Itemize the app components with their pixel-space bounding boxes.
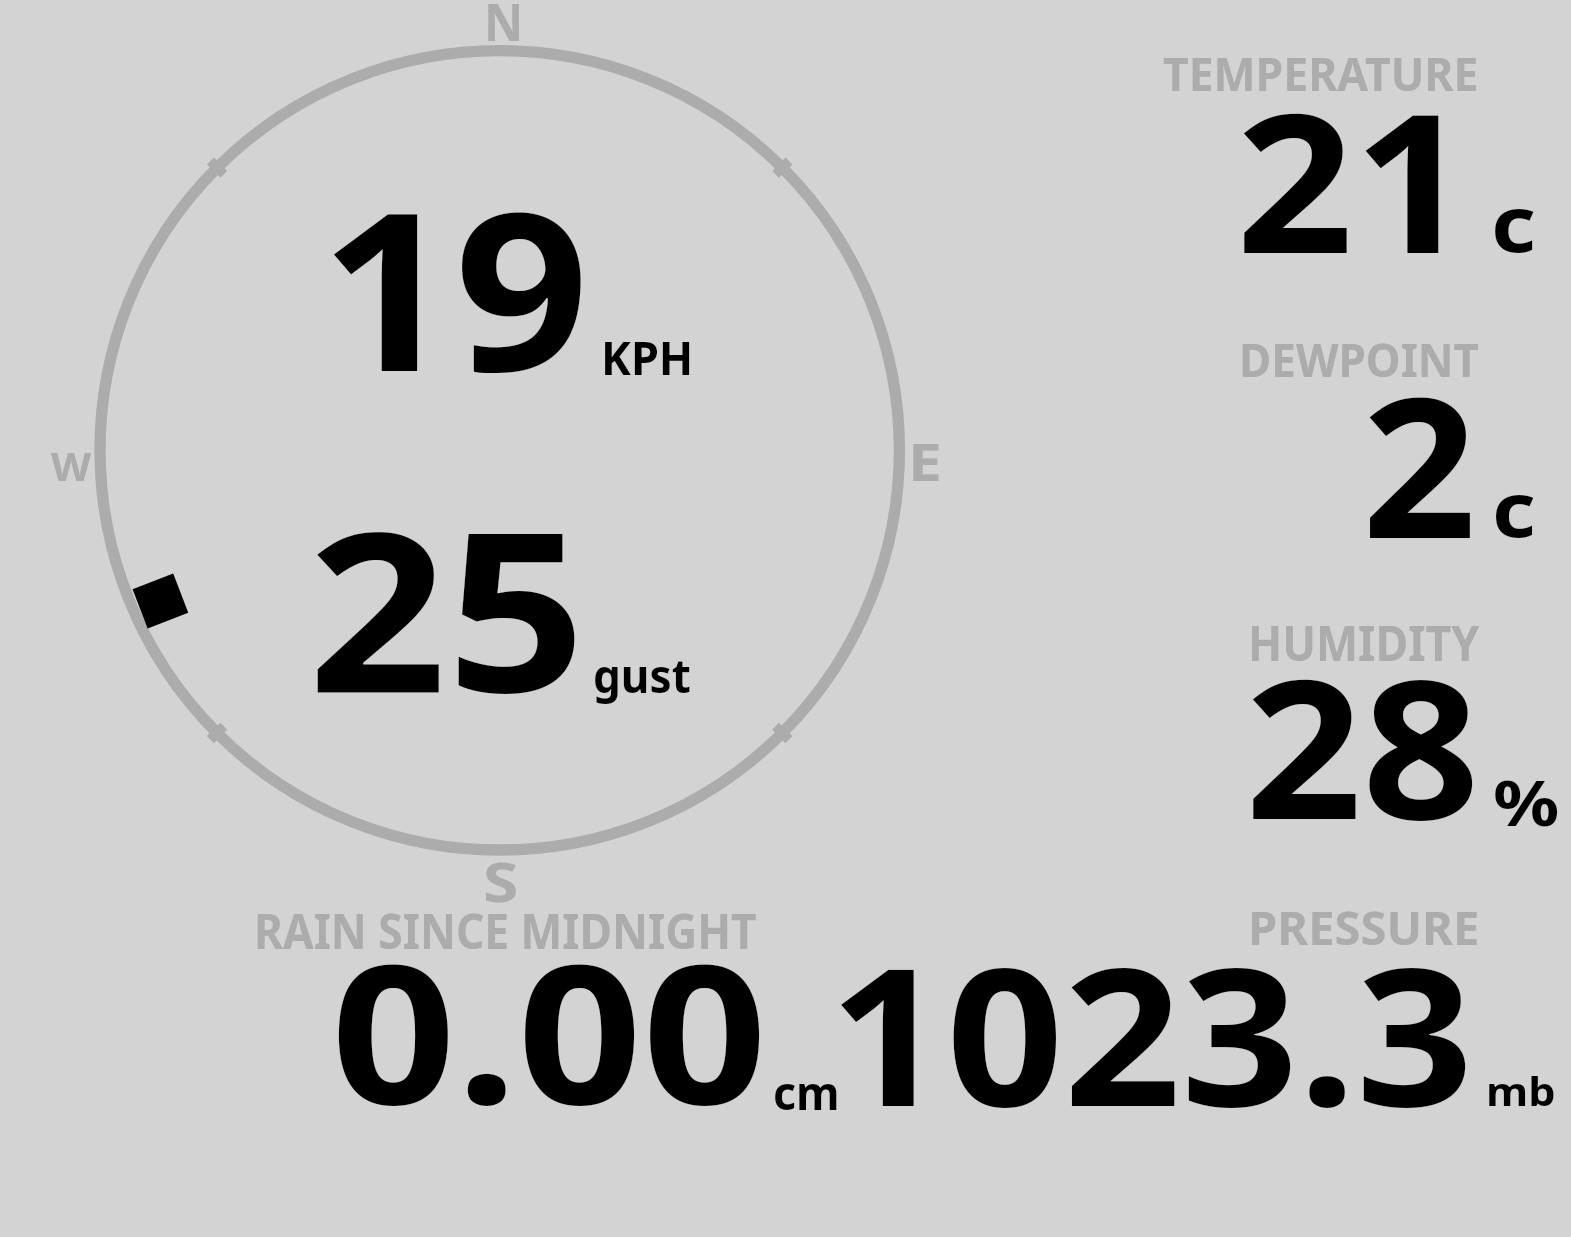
button[interactable]: Rain since midnight 0.00 cm <box>230 900 850 1130</box>
staticText: cm <box>773 1060 840 1124</box>
button[interactable]: Wind 19 KPH gusting 25, direction west s… <box>40 0 960 900</box>
staticText: 25 <box>308 456 586 756</box>
staticText: 2 <box>1362 330 1477 580</box>
staticText: 0.00 <box>331 898 768 1128</box>
staticText: S <box>483 844 519 918</box>
button[interactable]: Pressure 1023.3 mb <box>855 900 1555 1130</box>
button[interactable]: Temperature 21 degrees C <box>1130 30 1571 280</box>
staticText: HUMIDITY <box>1248 610 1479 675</box>
staticText: gust <box>593 644 691 707</box>
staticText: 19 <box>320 137 590 435</box>
staticText: c <box>1492 457 1536 558</box>
staticText: RAIN SINCE MIDNIGHT <box>254 898 757 963</box>
button[interactable]: Dewpoint 2 degrees C <box>1130 315 1571 565</box>
staticText: DEWPOINT <box>1239 326 1479 390</box>
staticText: E <box>908 426 942 496</box>
button[interactable]: Humidity 28 percent <box>1130 600 1571 850</box>
staticText: % <box>1493 759 1560 845</box>
staticText: TEMPERATURE <box>1163 40 1479 104</box>
staticText: 21 <box>1236 48 1471 298</box>
staticText: PRESSURE <box>1248 895 1480 959</box>
staticText: N <box>484 0 523 56</box>
staticText: mb <box>1486 1065 1556 1118</box>
staticText: 28 <box>1245 614 1480 864</box>
staticText: W <box>51 439 91 492</box>
staticText: c <box>1491 170 1536 275</box>
staticText: 1023.3 <box>829 903 1474 1133</box>
staticText: KPH <box>601 325 693 389</box>
